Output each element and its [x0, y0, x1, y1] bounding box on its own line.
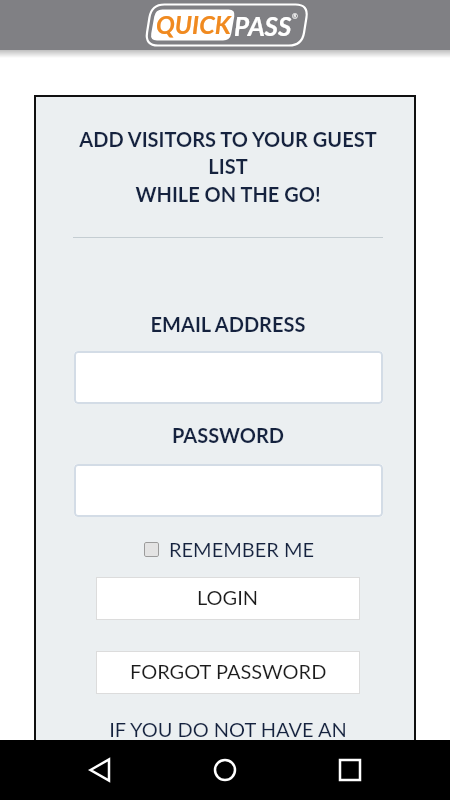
staticText: FORGOT PASSWORD — [130, 659, 327, 683]
staticText: PASS — [234, 10, 292, 41]
staticText: LIST — [39, 154, 417, 178]
button[interactable]: FORGOT PASSWORD — [96, 651, 360, 694]
button[interactable]: Password — [74, 464, 383, 517]
staticText: WHILE ON THE GO! — [39, 182, 417, 206]
button[interactable]: REMEMBER ME — [144, 537, 315, 561]
staticText: ADD VISITORS TO YOUR GUEST — [39, 127, 417, 151]
button[interactable]: LOGIN — [96, 577, 360, 620]
staticText: IF YOU DO NOT HAVE AN — [39, 717, 417, 741]
button[interactable]: Back — [76, 746, 124, 794]
staticText: ® — [292, 12, 298, 20]
staticText: REMEMBER ME — [169, 537, 315, 561]
staticText: PASSWORD — [39, 423, 417, 447]
button[interactable]: Email address — [74, 351, 383, 404]
button[interactable]: Recent apps — [326, 746, 374, 794]
staticText: QUICK — [156, 9, 231, 39]
button[interactable]: Home — [201, 746, 249, 794]
staticText: EMAIL ADDRESS — [39, 312, 417, 336]
staticText: LOGIN — [197, 585, 259, 609]
